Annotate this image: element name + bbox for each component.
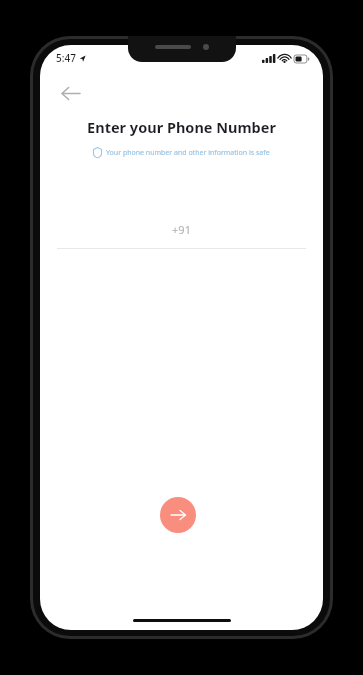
button[interactable]: Continue (160, 497, 196, 533)
staticText: +91 (172, 222, 191, 237)
staticText: 5:47 (56, 51, 76, 65)
staticText: Enter your Phone Number (87, 117, 276, 137)
button[interactable]: Back (50, 73, 90, 113)
staticText: Your phone number and other information … (106, 148, 270, 158)
button[interactable]: +91 (57, 222, 306, 249)
